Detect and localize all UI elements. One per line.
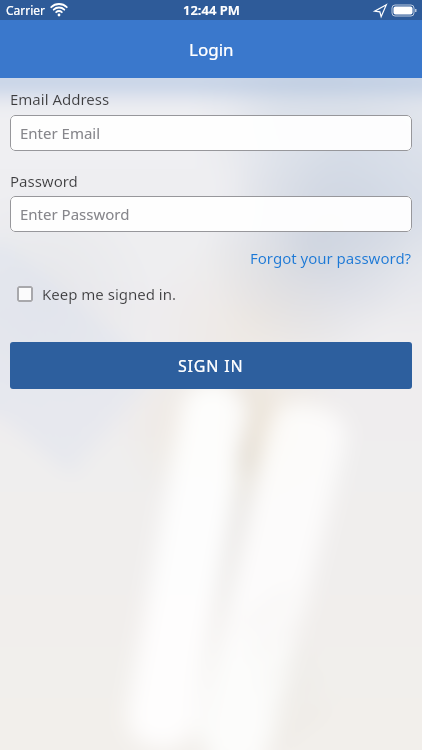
- staticText: Enter Email: [20, 123, 101, 143]
- staticText: Enter Password: [20, 204, 130, 224]
- button[interactable]: Enter Email: [10, 115, 412, 151]
- button[interactable]: Enter Password: [10, 196, 412, 232]
- staticText: Forgot your password?: [250, 248, 412, 268]
- button[interactable]: SIGN IN: [10, 342, 412, 389]
- button[interactable]: Keep me signed in.: [10, 284, 177, 304]
- staticText: Login: [189, 38, 234, 61]
- staticText: SIGN IN: [178, 355, 244, 377]
- button[interactable]: Forgot your password?: [250, 248, 412, 268]
- staticText: 12:44 PM: [183, 1, 240, 19]
- staticText: Carrier: [6, 2, 46, 18]
- staticText: Password: [10, 171, 78, 191]
- staticText: Keep me signed in.: [42, 284, 177, 304]
- staticText: Email Address: [10, 89, 110, 109]
